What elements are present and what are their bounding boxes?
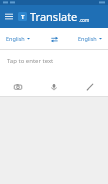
staticText: English [6,35,25,42]
button[interactable]: English [78,35,102,42]
staticText: .com [79,17,90,23]
staticText: English [78,35,97,42]
button[interactable]: Swap languages [45,30,63,48]
staticText: T [21,13,25,21]
button[interactable]: Tap to enter text [0,50,108,78]
button[interactable]: English [6,35,45,42]
button[interactable]: Voice input [46,79,62,95]
button[interactable]: Camera translate [10,79,26,95]
button[interactable]: Open navigation menu [0,8,18,26]
staticText: Tap to enter text [7,57,54,65]
staticText: Translate [30,9,78,24]
button[interactable]: Handwriting input [82,79,98,95]
